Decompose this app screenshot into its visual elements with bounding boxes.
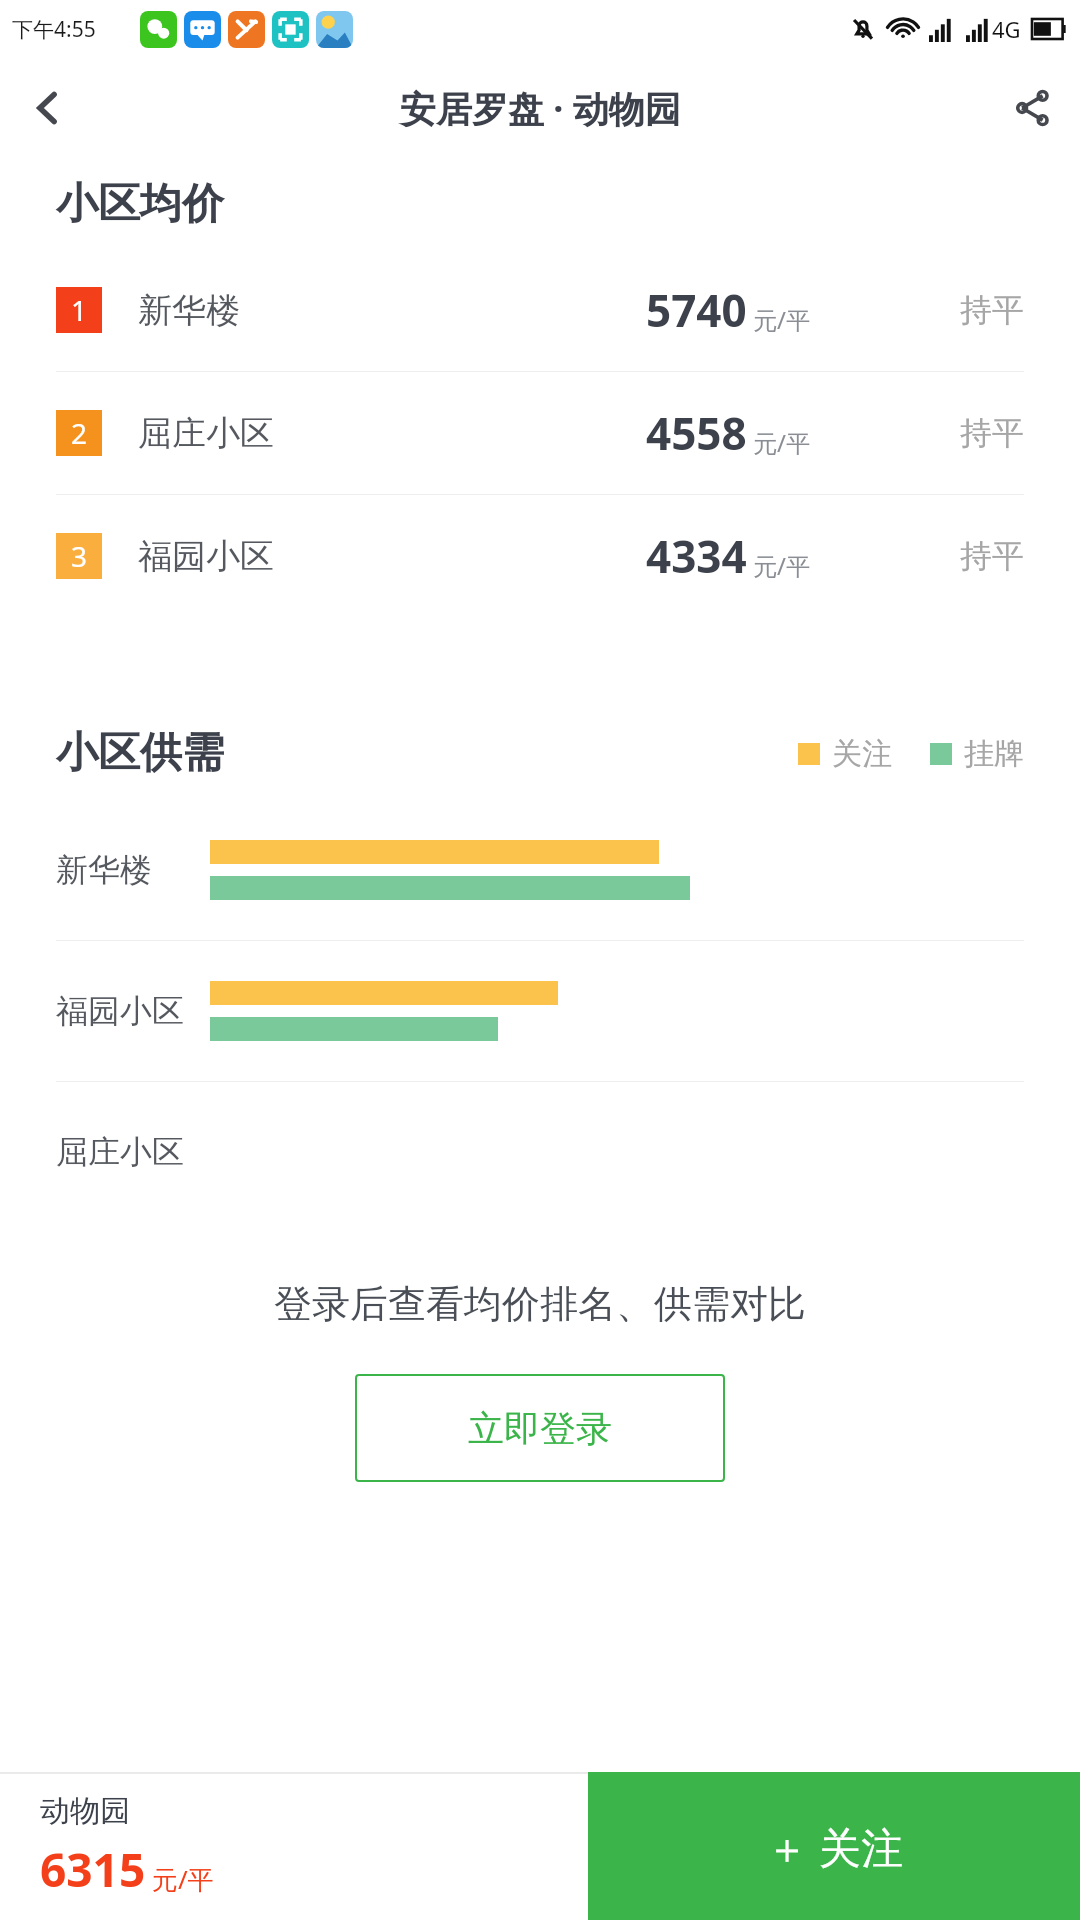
staticText: 持平 <box>960 290 1024 330</box>
staticText: 屈庄小区 <box>56 1132 184 1172</box>
button[interactable]: 关注 <box>798 735 892 773</box>
staticText: 4G <box>992 14 1021 44</box>
button[interactable]: 立即登录 <box>355 1374 725 1482</box>
staticText: 元/平 <box>152 1861 214 1897</box>
staticText: 4558 <box>646 403 747 463</box>
staticText: 屈庄小区 <box>138 412 274 455</box>
staticText: 立即登录 <box>468 1406 612 1451</box>
staticText: 元/平 <box>753 426 810 459</box>
staticText: 3 <box>71 537 88 575</box>
button[interactable]: 新华楼 <box>0 800 1080 940</box>
staticText: 元/平 <box>753 303 810 336</box>
staticText: 新华楼 <box>138 289 240 332</box>
button[interactable]: 1 <box>0 249 1080 371</box>
staticText: 5740 <box>646 280 747 340</box>
staticText: 1 <box>71 291 88 329</box>
staticText: 持平 <box>960 413 1024 453</box>
staticText: 小区供需 <box>56 727 224 780</box>
staticText: 6315 <box>40 1838 146 1901</box>
button[interactable]: 3 <box>0 495 1080 617</box>
staticText: 持平 <box>960 536 1024 576</box>
staticText: 安居罗盘 · 动物园 <box>400 84 681 133</box>
button[interactable]: ＋ 关注 <box>588 1772 1080 1920</box>
staticText: 福园小区 <box>138 535 274 578</box>
staticText: 元/平 <box>753 549 810 582</box>
button[interactable]: 福园小区 <box>0 941 1080 1081</box>
staticText: 4334 <box>646 526 747 586</box>
staticText: 福园小区 <box>56 991 184 1031</box>
button[interactable]: Share <box>984 60 1080 156</box>
button[interactable]: Back <box>0 60 96 156</box>
staticText: 登录后查看均价排名、供需对比 <box>274 1280 806 1328</box>
button[interactable]: 2 <box>0 372 1080 494</box>
staticText: 小区均价 <box>56 178 224 231</box>
staticText: 关注 <box>832 735 892 773</box>
staticText: 挂牌 <box>964 735 1024 773</box>
staticText: 2 <box>71 414 88 452</box>
staticText: 动物园 <box>40 1792 130 1830</box>
button[interactable]: 屈庄小区 <box>0 1082 1080 1222</box>
staticText: ＋ 关注 <box>766 1818 903 1875</box>
staticText: 新华楼 <box>56 850 152 890</box>
button[interactable]: 挂牌 <box>930 735 1024 773</box>
staticText: 下午4:55 <box>12 15 96 44</box>
